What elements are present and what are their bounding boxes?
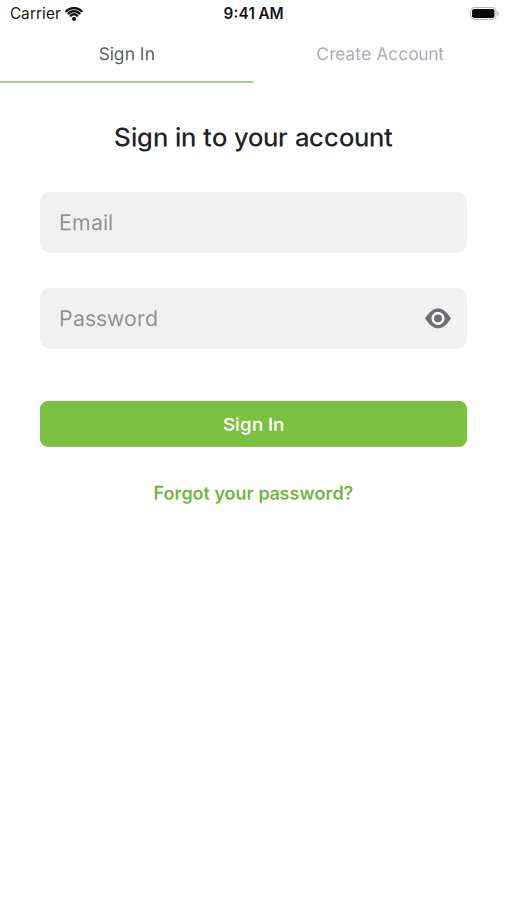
staticText: 9:41 AM [223,5,283,22]
staticText: Password [59,306,158,331]
button[interactable]: Create Account [253,27,507,81]
staticText: Create Account [316,44,444,64]
staticText: Sign In [223,413,284,435]
staticText: Forgot your password? [153,483,353,504]
staticText: Carrier [10,5,61,22]
staticText: Email [59,210,113,235]
button[interactable]: Sign In [0,27,253,81]
button[interactable]: Sign In [40,401,467,447]
button[interactable]: Show password [425,308,467,328]
button[interactable]: Forgot your password? [153,483,353,504]
staticText: Sign in to your account [114,122,393,152]
staticText: Sign In [99,44,155,64]
